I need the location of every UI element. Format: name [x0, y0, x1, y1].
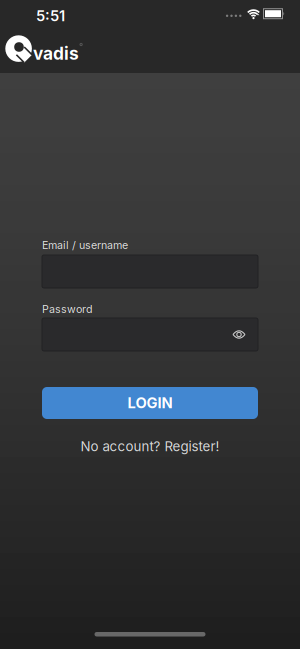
button[interactable]: LOGIN — [42, 387, 258, 419]
button[interactable]: Show password — [232, 329, 258, 339]
staticText: vadis — [33, 43, 79, 64]
button[interactable]: Password — [42, 318, 258, 351]
staticText: 5:51 — [36, 7, 65, 25]
staticText: LOGIN — [127, 394, 172, 412]
staticText: Password — [42, 303, 93, 315]
button[interactable]: No account? Register! — [80, 438, 219, 454]
staticText: No account? Register! — [80, 438, 219, 454]
staticText: Email / username — [42, 239, 128, 251]
